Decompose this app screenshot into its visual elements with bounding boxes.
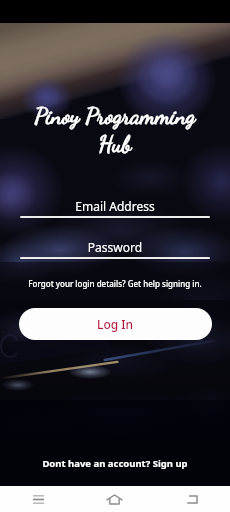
staticText: Password bbox=[20, 239, 210, 255]
button[interactable]: Email Address bbox=[20, 198, 210, 218]
staticText: Email Address bbox=[20, 198, 210, 214]
staticText: Log In bbox=[97, 316, 134, 332]
staticText: Pinoy Programming Hub bbox=[0, 102, 230, 158]
button[interactable]: Dont have an account? Sign up bbox=[0, 457, 230, 470]
button[interactable]: Back bbox=[153, 486, 230, 512]
button[interactable]: Log In bbox=[19, 308, 212, 340]
button[interactable]: Password bbox=[20, 239, 210, 259]
button[interactable]: Forgot your login details? Get help sign… bbox=[0, 278, 230, 289]
button[interactable]: Recent apps bbox=[0, 486, 76, 512]
button[interactable]: Home bbox=[76, 486, 153, 512]
